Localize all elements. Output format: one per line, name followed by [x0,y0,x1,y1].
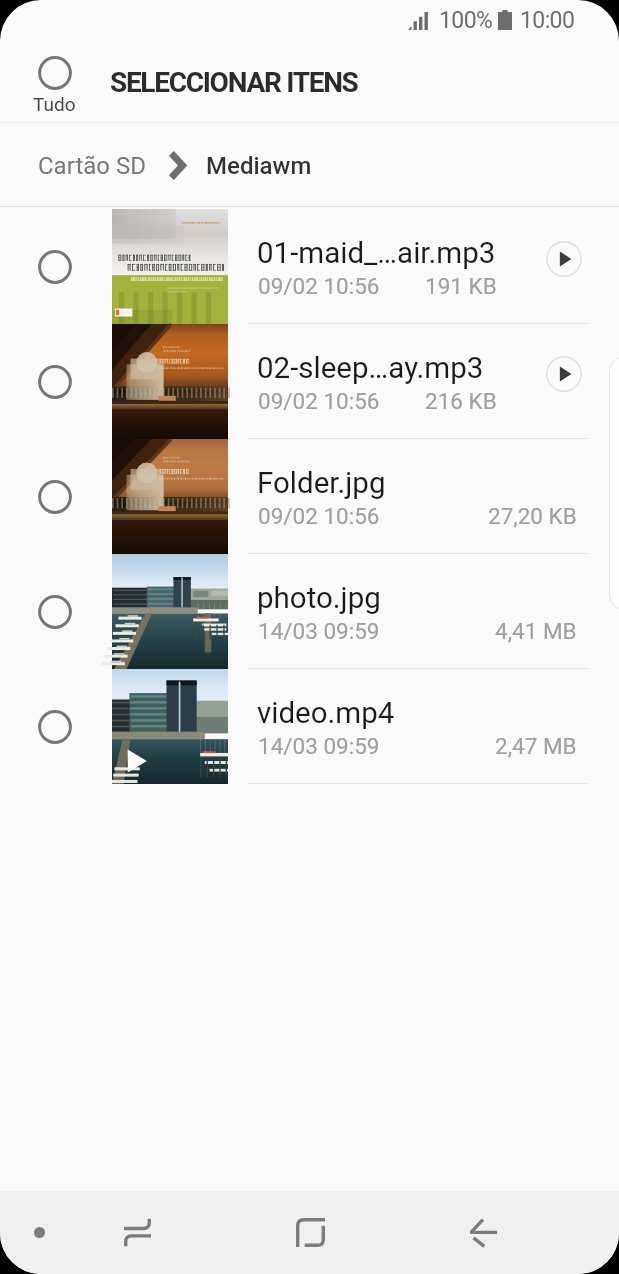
staticText: 02-sleep…ay.mp3 [257,351,484,386]
staticText: 09/02 10:56 [258,273,380,299]
staticText: 14/03 09:59 [258,618,380,644]
staticText: Folder.jpg [257,466,386,501]
button[interactable]: Mediawm [206,152,312,180]
button[interactable]: Tudo [27,56,82,115]
button[interactable]: Back [453,1191,513,1274]
staticText: SELECCIONAR ITENS [110,66,358,99]
staticText: Tudo [33,93,76,115]
staticText: photo.jpg [257,581,381,616]
staticText: 4,41 MB [495,618,577,644]
button[interactable]: photo.jpg [0,554,619,669]
staticText: 01-maid_…air.mp3 [257,236,496,271]
button[interactable]: Home [280,1191,340,1274]
staticText: video.mp4 [257,696,395,731]
staticText: 216 KB [425,388,497,414]
button[interactable]: Recents [107,1191,167,1274]
button[interactable]: Menu [19,1191,60,1274]
button[interactable]: Play [546,356,582,392]
staticText: 27,20 KB [488,503,577,529]
staticText: 09/02 10:56 [258,503,380,529]
staticText: 14/03 09:59 [258,733,380,759]
button[interactable]: 02-sleep…ay.mp3 [0,324,619,439]
staticText: 191 KB [425,273,497,299]
staticText: 100% [439,7,493,34]
button[interactable]: video.mp4 [0,669,619,784]
staticText: 2,47 MB [495,733,577,759]
button[interactable]: Play [546,241,582,277]
button[interactable]: 01-maid_…air.mp3 [0,209,619,324]
button[interactable]: Folder.jpg [0,439,619,554]
staticText: 10:00 [520,7,575,34]
button[interactable]: Cartão SD [38,152,146,180]
staticText: 09/02 10:56 [258,388,380,414]
